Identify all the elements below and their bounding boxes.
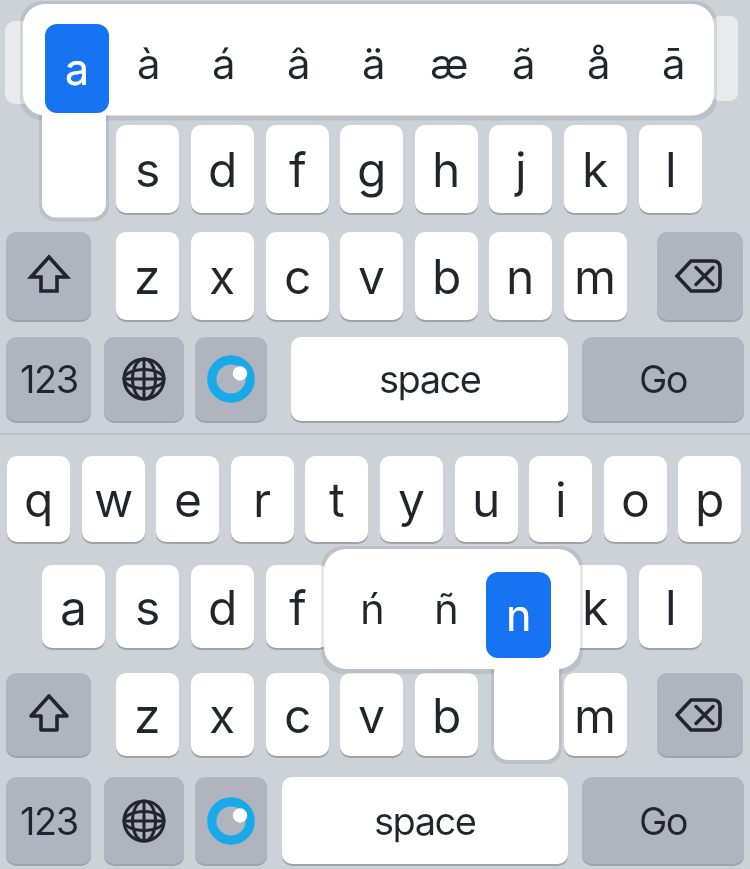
staticText: 123 <box>20 798 78 844</box>
button[interactable]: space <box>282 777 568 864</box>
button[interactable]: p <box>678 456 741 542</box>
staticText: Go <box>639 798 688 844</box>
staticText: t <box>329 470 345 528</box>
staticText: z <box>134 686 161 744</box>
button[interactable] <box>195 777 267 864</box>
button[interactable]: á <box>191 21 257 105</box>
staticText: l <box>665 140 677 198</box>
staticText: b <box>432 247 462 305</box>
button[interactable]: s <box>116 125 179 213</box>
button[interactable]: m <box>564 673 627 756</box>
button[interactable]: w <box>82 456 145 542</box>
staticText: k <box>582 578 609 636</box>
button[interactable]: a <box>45 24 109 113</box>
button[interactable] <box>657 232 743 320</box>
button[interactable]: e <box>156 456 219 542</box>
staticText: Go <box>639 356 688 402</box>
button[interactable]: t <box>305 456 368 542</box>
staticText: j <box>515 578 527 636</box>
staticText: ñ <box>434 583 459 634</box>
button[interactable]: Go <box>582 337 744 421</box>
button[interactable]: d <box>191 125 254 213</box>
button[interactable]: c <box>266 673 329 756</box>
button[interactable]: Go <box>582 777 744 864</box>
button[interactable] <box>657 673 743 756</box>
staticText: a <box>60 578 87 636</box>
staticText: s <box>135 578 161 636</box>
button[interactable]: g <box>340 125 403 213</box>
button[interactable]: o <box>604 456 667 542</box>
staticText: n <box>506 589 532 641</box>
button[interactable]: æ <box>416 21 482 105</box>
staticText: b <box>432 686 462 744</box>
staticText: v <box>358 247 385 305</box>
button[interactable]: n <box>489 232 552 320</box>
staticText: á <box>212 38 236 89</box>
button[interactable]: 123 <box>6 777 91 864</box>
button[interactable]: f <box>266 565 329 648</box>
button[interactable]: h <box>415 125 478 213</box>
button[interactable]: x <box>191 673 254 756</box>
button[interactable]: i <box>529 456 592 542</box>
button[interactable]: ā <box>641 21 707 105</box>
staticText: a <box>65 43 90 95</box>
staticText: æ <box>430 38 469 89</box>
button[interactable]: r <box>231 456 294 542</box>
button[interactable]: b <box>415 673 478 756</box>
button[interactable]: m <box>564 232 627 320</box>
button[interactable]: å <box>566 21 632 105</box>
button[interactable]: v <box>340 232 403 320</box>
button[interactable]: b <box>415 232 478 320</box>
button[interactable]: space <box>291 337 568 421</box>
button[interactable]: j <box>489 565 552 648</box>
button[interactable]: g <box>340 565 403 648</box>
button[interactable]: x <box>191 232 254 320</box>
button[interactable] <box>195 337 267 421</box>
staticText: x <box>209 247 236 305</box>
button[interactable]: c <box>266 232 329 320</box>
button[interactable]: k <box>564 125 627 213</box>
staticText: d <box>208 140 238 198</box>
button[interactable]: n <box>486 572 551 658</box>
staticText: e <box>174 470 202 528</box>
staticText: ń <box>360 583 385 634</box>
staticText: 123 <box>20 356 78 402</box>
staticText: â <box>287 38 311 89</box>
staticText: q <box>24 470 54 528</box>
button[interactable]: v <box>340 673 403 756</box>
button[interactable] <box>6 673 91 756</box>
button[interactable]: u <box>455 456 518 542</box>
staticText: l <box>665 578 677 636</box>
staticText: h <box>432 140 461 198</box>
button[interactable]: a <box>42 565 105 648</box>
button[interactable]: h <box>415 565 478 648</box>
staticText: space <box>374 798 476 844</box>
button[interactable]: â <box>266 21 332 105</box>
button[interactable]: 123 <box>6 337 91 421</box>
button[interactable]: ã <box>491 21 557 105</box>
button[interactable]: ñ <box>413 566 479 650</box>
staticText: f <box>289 578 307 636</box>
button[interactable] <box>6 232 91 320</box>
button[interactable]: j <box>489 125 552 213</box>
button[interactable]: f <box>266 125 329 213</box>
button[interactable]: k <box>564 565 627 648</box>
button[interactable]: d <box>191 565 254 648</box>
button[interactable] <box>104 777 184 864</box>
button[interactable]: l <box>639 565 702 648</box>
button[interactable] <box>104 337 184 421</box>
button[interactable]: z <box>116 232 179 320</box>
button[interactable]: s <box>116 565 179 648</box>
button[interactable]: à <box>116 21 182 105</box>
button[interactable]: y <box>380 456 443 542</box>
staticText: n <box>506 247 535 305</box>
button[interactable]: z <box>116 673 179 756</box>
staticText: d <box>208 578 238 636</box>
button[interactable]: ä <box>341 21 407 105</box>
button[interactable]: l <box>639 125 702 213</box>
staticText: x <box>209 686 236 744</box>
staticText: v <box>358 686 385 744</box>
staticText: j <box>515 140 527 198</box>
button[interactable]: ń <box>339 566 405 650</box>
button[interactable]: q <box>7 456 70 542</box>
